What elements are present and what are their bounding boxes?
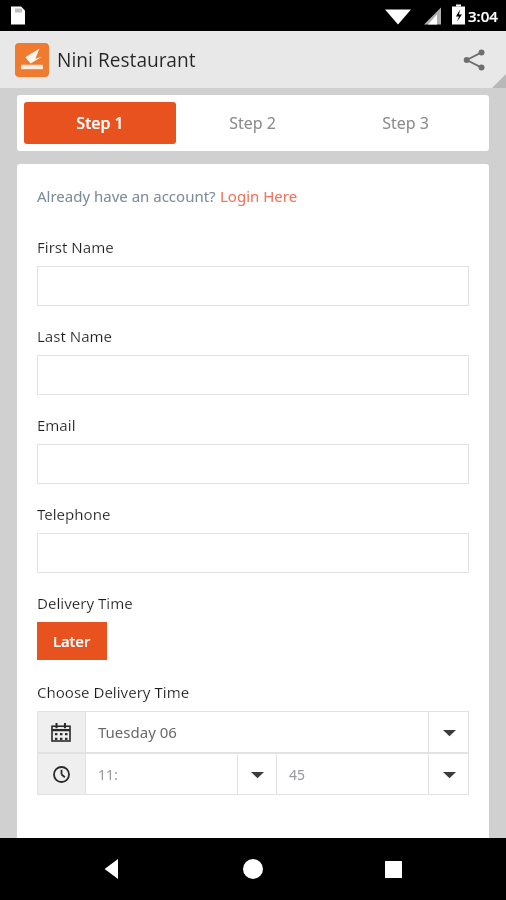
button[interactable]: Expand date xyxy=(429,711,469,753)
button[interactable]: Pick date xyxy=(37,711,85,753)
button[interactable] xyxy=(37,266,469,306)
staticText: Delivery Time xyxy=(37,593,133,613)
staticText: 45 xyxy=(289,765,306,784)
button[interactable]: Share xyxy=(452,38,496,82)
button[interactable]: Step 3 xyxy=(329,102,482,144)
button[interactable]: Pick time xyxy=(37,753,85,795)
button[interactable]: Nini Restaurant logo xyxy=(15,43,49,77)
button[interactable]: Recent apps xyxy=(366,842,420,896)
button[interactable]: Back xyxy=(86,842,140,896)
staticText: Already have an account? xyxy=(37,186,220,206)
button[interactable]: Expand hour xyxy=(238,753,276,795)
button[interactable] xyxy=(37,355,469,395)
staticText: Last Name xyxy=(37,326,113,346)
staticText: First Name xyxy=(37,237,114,257)
staticText: Later xyxy=(53,631,91,651)
button[interactable]: Later xyxy=(37,622,107,660)
button[interactable]: Tuesday 06 xyxy=(86,711,428,753)
staticText: Choose Delivery Time xyxy=(37,682,190,702)
staticText: 3:04 xyxy=(468,6,498,26)
staticText: Step 1 xyxy=(76,112,124,134)
button[interactable]: 11: xyxy=(86,753,237,795)
button[interactable]: Expand minute xyxy=(429,753,469,795)
staticText: Email xyxy=(37,415,76,435)
button[interactable] xyxy=(37,533,469,573)
button[interactable] xyxy=(37,444,469,484)
button[interactable]: Home xyxy=(226,842,280,896)
button[interactable]: Step 1 xyxy=(24,102,176,144)
button[interactable]: 45 xyxy=(277,753,428,795)
staticText: Login Here xyxy=(220,186,298,206)
button[interactable]: Login Here xyxy=(220,186,298,206)
staticText: Telephone xyxy=(37,504,111,524)
staticText: Step 2 xyxy=(229,112,276,134)
staticText: Step 3 xyxy=(382,112,429,134)
staticText: 11: xyxy=(98,765,118,784)
staticText: Tuesday 06 xyxy=(98,722,177,742)
staticText: Nini Restaurant xyxy=(57,47,196,73)
button[interactable]: Step 2 xyxy=(176,102,329,144)
